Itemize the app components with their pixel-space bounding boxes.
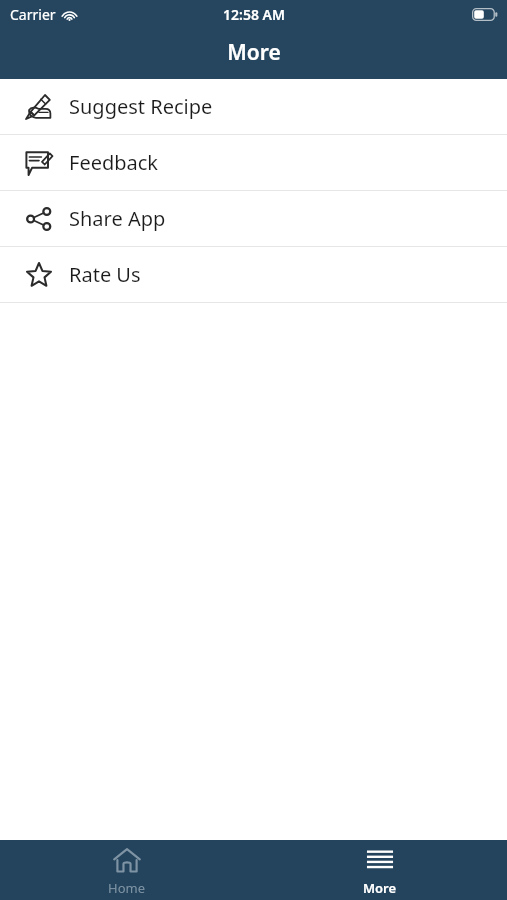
staticText: Rate Us	[69, 261, 141, 288]
button[interactable]: Feedback	[0, 135, 507, 190]
button[interactable]: More	[253, 840, 507, 900]
button[interactable]: Home	[0, 840, 253, 900]
staticText: More	[227, 38, 281, 67]
staticText: Suggest Recipe	[69, 93, 213, 120]
button[interactable]: Share App	[0, 191, 507, 246]
button[interactable]: Rate Us	[0, 247, 507, 302]
staticText: Home	[108, 879, 145, 897]
staticText: Feedback	[69, 149, 159, 176]
staticText: Share App	[69, 205, 166, 232]
staticText: Carrier	[10, 5, 56, 24]
staticText: More	[363, 879, 397, 897]
staticText: 12:58 AM	[223, 5, 285, 24]
button[interactable]: Suggest Recipe	[0, 79, 507, 134]
